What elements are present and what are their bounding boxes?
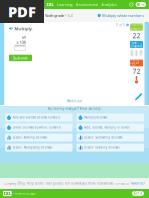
- staticText: >: [65, 14, 67, 17]
- staticText: 64: [21, 34, 25, 40]
- staticText: IXL: [4, 191, 11, 196]
- staticText: 00: [131, 50, 133, 57]
- staticText: Add and subtract decimal numbers: [13, 116, 60, 119]
- staticText: Lesson: Multiplying decimals: [13, 146, 52, 149]
- staticText: Not feeling ready yet? These can help:: [47, 107, 101, 110]
- staticText: Assessment: [76, 2, 98, 7]
- button[interactable]: Listen: [9, 27, 13, 31]
- button[interactable]: Submit: [9, 55, 32, 61]
- button[interactable]: Lesson: Dividing decimals: [76, 143, 144, 151]
- button[interactable]: Get it: [132, 191, 144, 196]
- button[interactable]: Assessment: [74, 2, 99, 7]
- button[interactable]: Search: [129, 2, 134, 7]
- staticText: Contact us: [115, 182, 129, 185]
- staticText: Newsletter: [131, 182, 145, 185]
- staticText: Multiply.: [14, 26, 32, 31]
- staticText: 0 of 5: [116, 23, 125, 27]
- staticText: 22: [132, 31, 140, 40]
- button[interactable]: Lesson: Subtracting decimals: [76, 133, 144, 141]
- button[interactable]: Testimonials: [97, 182, 113, 185]
- staticText: Tell us what you think: [65, 182, 95, 185]
- staticText: S.4: [68, 13, 73, 18]
- button[interactable]: User guides: [46, 182, 63, 185]
- staticText: Help center: [27, 182, 44, 185]
- button[interactable]: Divide decimals by whole numbers: [5, 123, 72, 131]
- staticText: Work it out: [67, 99, 82, 103]
- button[interactable]: Newsletter: [131, 182, 145, 185]
- staticText: Get it: [134, 192, 142, 195]
- staticText: User guides: [46, 182, 63, 185]
- staticText: Company: [4, 182, 16, 185]
- button[interactable]: IXL: [45, 2, 55, 7]
- button[interactable]: Company: [4, 182, 16, 185]
- staticText: Sixth grade: [45, 13, 64, 18]
- button[interactable]: Lesson: Multiplying decimals: [5, 143, 72, 151]
- staticText: Multiply whole numbers: [102, 13, 144, 18]
- staticText: 41: [140, 50, 142, 57]
- staticText: Lesson: Adding decimals: [13, 136, 47, 139]
- button[interactable]: Account menu: [136, 2, 146, 7]
- button[interactable]: Work it out: [67, 99, 82, 103]
- staticText: me: [141, 3, 145, 6]
- staticText: Multiply decimals: [84, 116, 107, 119]
- staticText: SmartScore out of 100: [130, 58, 143, 68]
- staticText: Lesson: Dividing decimals: [84, 146, 119, 149]
- button[interactable]: Add, subtract, multiply, or divide: [76, 123, 144, 131]
- button[interactable]: Info: [126, 23, 129, 26]
- staticText: x 138: [16, 40, 25, 45]
- staticText: Lesson: Subtracting decimals: [84, 136, 122, 139]
- button[interactable]: Tell us what you think: [65, 182, 95, 185]
- button[interactable]: IXL: [3, 191, 36, 196]
- staticText: PDF: [8, 2, 36, 21]
- button[interactable]: Scratch pad: [135, 93, 143, 101]
- staticText: Analytics: [101, 2, 117, 7]
- button[interactable]: Analytics: [99, 2, 119, 7]
- button[interactable]: Add and subtract decimal numbers: [5, 113, 72, 121]
- button[interactable]: Help center: [27, 182, 44, 185]
- staticText: Problems answered: [130, 23, 143, 31]
- button[interactable]: SmartScore out of 100: [130, 59, 143, 66]
- staticText: 72: [132, 67, 140, 76]
- staticText: Divide decimals by whole numbers: [13, 126, 61, 129]
- staticText: Time elapsed: [131, 41, 142, 48]
- staticText: Learning: [57, 2, 72, 7]
- staticText: Premium IXL app: [13, 192, 36, 195]
- button[interactable]: Blog: [18, 182, 25, 185]
- staticText: Add, subtract, multiply, or divide: [84, 126, 130, 129]
- button[interactable]: Contact us: [115, 182, 129, 185]
- button[interactable]: Multiply decimals: [76, 113, 144, 121]
- button[interactable]: Problems answered: [130, 23, 143, 30]
- button[interactable]: Multiply whole numbers: [98, 13, 144, 18]
- staticText: Testimonials: [97, 182, 113, 185]
- staticText: Blog: [18, 182, 25, 185]
- staticText: 02: [135, 50, 137, 57]
- staticText: Submit: [13, 55, 28, 60]
- button[interactable]: Learning: [55, 2, 74, 7]
- staticText: IXL: [47, 2, 54, 7]
- button[interactable]: Time elapsed: [130, 41, 143, 48]
- button[interactable]: Sixth grade: [45, 13, 73, 18]
- button[interactable]: Lesson: Adding decimals: [5, 133, 72, 141]
